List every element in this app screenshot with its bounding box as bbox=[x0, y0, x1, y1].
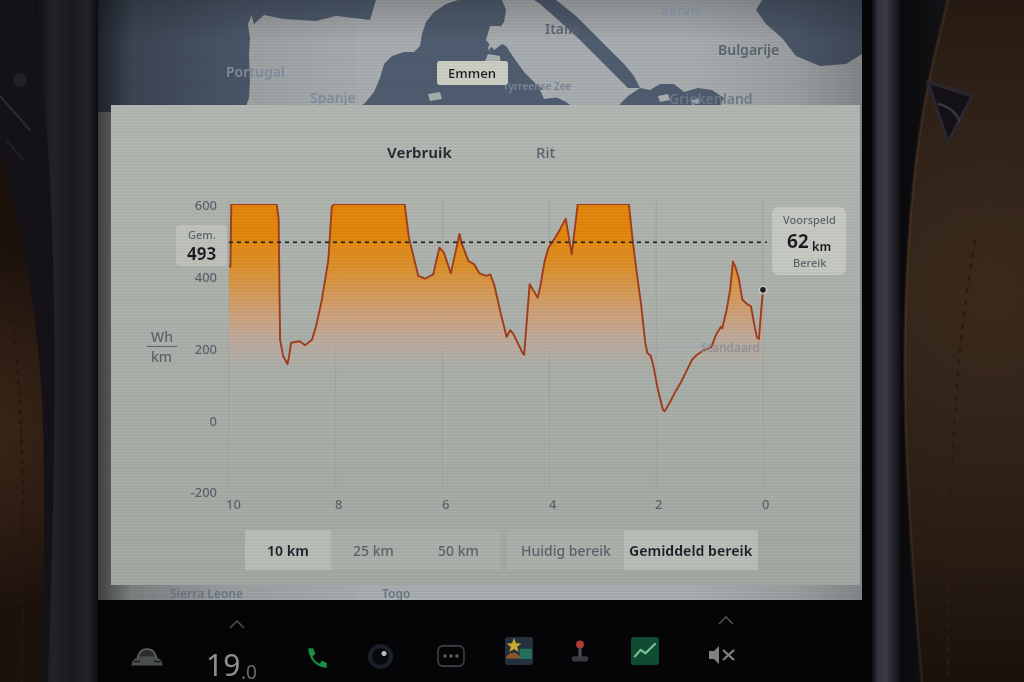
staticText: 493 bbox=[187, 242, 217, 265]
button[interactable]: Media bbox=[496, 628, 542, 674]
staticText: 0 bbox=[209, 412, 217, 430]
button[interactable]: Expand panel bbox=[226, 616, 248, 638]
staticText: 200 bbox=[194, 340, 217, 358]
staticText: Portugal bbox=[226, 62, 285, 81]
button[interactable]: 10 km bbox=[245, 530, 331, 570]
staticText: Gemiddeld bereik bbox=[629, 541, 753, 560]
staticText: Emmen bbox=[448, 64, 497, 82]
staticText: 400 bbox=[194, 268, 217, 286]
button[interactable]: 25 km bbox=[331, 530, 416, 570]
staticText: 62 bbox=[787, 228, 809, 254]
staticText: 6 bbox=[442, 495, 450, 513]
staticText: Italië bbox=[545, 19, 581, 38]
staticText: Voorspeld bbox=[783, 212, 836, 227]
staticText: Rit bbox=[536, 142, 556, 162]
staticText: .0 bbox=[241, 659, 257, 682]
button[interactable]: Car controls bbox=[124, 634, 170, 680]
staticText: 25 km bbox=[353, 541, 394, 560]
staticText: km bbox=[809, 238, 832, 254]
button[interactable]: Huidig bereik bbox=[507, 530, 624, 570]
staticText: 600 bbox=[194, 196, 217, 214]
staticText: 4 bbox=[549, 495, 557, 513]
staticText: 10 bbox=[226, 495, 241, 513]
button[interactable]: Phone bbox=[294, 635, 340, 681]
button[interactable]: Rit bbox=[504, 137, 588, 167]
staticText: Verbruik bbox=[387, 142, 452, 162]
staticText: Bereik bbox=[793, 255, 827, 270]
button[interactable]: Expand panel bbox=[715, 612, 737, 634]
button[interactable]: Toybox bbox=[557, 628, 603, 674]
staticText: Togo bbox=[382, 585, 411, 601]
staticText: -200 bbox=[190, 483, 217, 501]
staticText: Gem. bbox=[188, 227, 216, 242]
staticText: 2 bbox=[655, 495, 663, 513]
button[interactable]: Camera bbox=[357, 633, 403, 679]
button[interactable]: Verbruik bbox=[369, 137, 469, 167]
staticText: Standaard bbox=[701, 339, 761, 355]
staticText: Servië bbox=[661, 0, 703, 19]
staticText: Spanje bbox=[310, 88, 356, 107]
button[interactable]: 19 bbox=[200, 638, 263, 682]
button[interactable]: 50 km bbox=[416, 530, 500, 570]
staticText: Wh bbox=[151, 327, 173, 346]
staticText: 19 bbox=[206, 644, 241, 682]
staticText: 0 bbox=[762, 495, 770, 513]
staticText: km bbox=[151, 347, 173, 366]
staticText: 8 bbox=[335, 495, 343, 513]
button[interactable]: Emmen bbox=[437, 61, 508, 85]
button[interactable]: Gemiddeld bereik bbox=[624, 530, 758, 570]
staticText: Sierra Leone bbox=[170, 585, 243, 601]
staticText: Griekenland bbox=[669, 89, 753, 108]
button[interactable]: More apps bbox=[428, 633, 474, 679]
button[interactable]: Mute bbox=[699, 632, 745, 678]
button[interactable]: Energy bbox=[622, 628, 668, 674]
staticText: 10 km bbox=[267, 541, 309, 560]
staticText: Bulgarije bbox=[718, 40, 780, 59]
staticText: Huidig bereik bbox=[521, 541, 611, 560]
staticText: Tyrreense Zee bbox=[503, 79, 572, 93]
staticText: 50 km bbox=[438, 541, 479, 560]
